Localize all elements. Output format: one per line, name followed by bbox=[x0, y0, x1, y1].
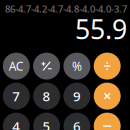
button[interactable]: % bbox=[63, 53, 90, 80]
staticText: 4 bbox=[12, 117, 20, 130]
button[interactable]: Multiply bbox=[94, 83, 121, 110]
staticText: 8 bbox=[43, 87, 51, 105]
button[interactable]: AC bbox=[3, 53, 30, 80]
button[interactable]: 4 bbox=[3, 113, 30, 130]
button[interactable]: Subtract bbox=[94, 113, 121, 130]
staticText: 6 bbox=[73, 117, 81, 130]
staticText: % bbox=[72, 58, 82, 74]
button[interactable]: Toggle sign bbox=[33, 53, 60, 80]
staticText: 86-4.7-4.2-4.7-4.8-4.0-4.0-3.7 bbox=[5, 3, 127, 15]
staticText: 9 bbox=[73, 87, 81, 105]
button[interactable]: 9 bbox=[63, 83, 90, 110]
staticText: AC bbox=[9, 58, 24, 74]
button[interactable]: Divide bbox=[94, 53, 121, 80]
button[interactable]: 8 bbox=[33, 83, 60, 110]
staticText: 55.9 bbox=[75, 11, 127, 47]
button[interactable]: 7 bbox=[3, 83, 30, 110]
button[interactable]: 6 bbox=[63, 113, 90, 130]
staticText: 5 bbox=[43, 117, 51, 130]
button[interactable]: 5 bbox=[33, 113, 60, 130]
staticText: 7 bbox=[12, 87, 20, 105]
